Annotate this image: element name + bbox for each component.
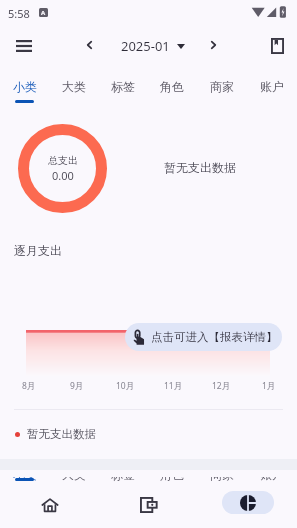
button[interactable]: 2025-01	[117, 35, 189, 57]
staticText: 商家	[210, 477, 234, 482]
staticText: 账户	[260, 79, 284, 94]
staticText: 小类	[13, 477, 37, 482]
staticText: 逐月支出	[14, 243, 62, 258]
button[interactable]: Menu	[2, 24, 46, 68]
staticText: 5:58	[8, 6, 30, 21]
staticText: 暂无支出数据	[27, 427, 96, 441]
staticText: 12月	[212, 380, 231, 392]
staticText: 10月	[116, 380, 135, 392]
staticText: 标签	[111, 79, 135, 94]
staticText: 标签	[111, 477, 135, 482]
button[interactable]: 点击可进入【报表详情】	[125, 323, 282, 351]
button[interactable]: 标签	[98, 72, 147, 100]
button[interactable]: Home	[0, 482, 99, 527]
staticText: 暂无支出数据	[164, 160, 236, 175]
staticText: 2025-01	[121, 37, 170, 55]
staticText: 0.00	[52, 168, 74, 183]
button[interactable]: 角色	[147, 72, 197, 100]
button[interactable]: 大类	[49, 72, 98, 100]
button[interactable]: 暂无支出数据	[15, 427, 96, 441]
button[interactable]: 账户	[247, 72, 297, 100]
staticText: 8月	[22, 380, 36, 392]
button[interactable]: Previous month	[72, 28, 106, 62]
button[interactable]: 商家	[197, 72, 247, 100]
staticText: 角色	[160, 79, 184, 94]
staticText: 总支出	[48, 154, 78, 167]
staticText: 角色	[160, 477, 184, 482]
staticText: 大类	[62, 79, 86, 94]
staticText: 11月	[164, 380, 183, 392]
button[interactable]: 小类	[0, 72, 49, 100]
button[interactable]: Next month	[196, 28, 230, 62]
staticText: 账户	[260, 477, 284, 482]
staticText: 1月	[262, 380, 276, 392]
button[interactable]: Wallet	[99, 482, 198, 527]
staticText: 商家	[210, 79, 234, 94]
staticText: 大类	[62, 477, 86, 482]
button[interactable]: Reports	[198, 482, 297, 527]
staticText: 9月	[70, 380, 84, 392]
button[interactable]: Ledger	[255, 24, 297, 68]
staticText: 点击可进入【报表详情】	[151, 330, 278, 344]
staticText: 小类	[13, 79, 37, 94]
staticText: A	[41, 9, 46, 17]
